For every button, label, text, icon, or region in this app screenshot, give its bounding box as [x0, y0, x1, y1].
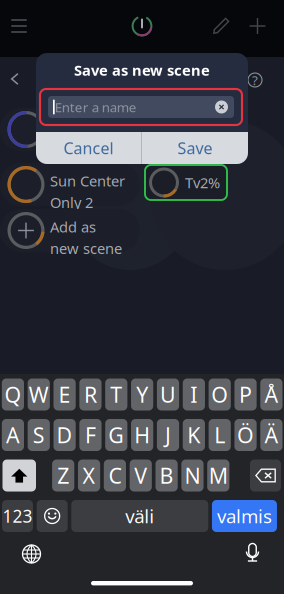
button[interactable]: V — [130, 459, 152, 491]
button[interactable]: M — [207, 459, 229, 491]
button[interactable]: Emoji — [37, 500, 68, 532]
button[interactable]: Q — [2, 378, 24, 410]
staticText: A — [6, 421, 20, 449]
staticText: väli — [125, 504, 154, 528]
button[interactable]: Back — [2, 66, 28, 92]
staticText: Save — [177, 137, 212, 159]
staticText: Å — [264, 380, 278, 409]
button[interactable]: D — [53, 419, 76, 451]
staticText: V — [134, 461, 147, 490]
button[interactable]: K — [183, 419, 205, 451]
button[interactable]: Add as — [0, 209, 140, 252]
staticText: ? — [252, 71, 258, 89]
staticText: P — [239, 380, 252, 409]
staticText: C — [108, 461, 121, 490]
staticText: 123 — [2, 504, 32, 527]
staticText: X — [82, 461, 95, 490]
button[interactable]: W — [28, 378, 50, 410]
button[interactable]: Tv2% — [145, 165, 227, 200]
button[interactable]: valmis — [212, 500, 277, 532]
button[interactable]: Ä — [260, 419, 282, 451]
button[interactable]: F — [79, 419, 101, 451]
button[interactable]: Add — [240, 9, 274, 43]
button[interactable]: Delete — [250, 459, 281, 491]
button[interactable]: S — [28, 419, 50, 451]
button[interactable]: Sun Center — [0, 163, 140, 206]
button[interactable]: O — [209, 378, 231, 410]
button[interactable]: Å — [260, 378, 282, 410]
staticText: Ö — [237, 421, 254, 449]
button[interactable]: C — [104, 459, 126, 491]
staticText: N — [184, 461, 200, 490]
button[interactable]: 123 — [2, 500, 33, 532]
staticText: new scene — [50, 238, 122, 258]
button[interactable]: Z — [52, 459, 74, 491]
staticText: valmis — [217, 504, 272, 528]
staticText: Only 2 — [50, 192, 93, 212]
staticText: G — [108, 421, 124, 449]
button[interactable]: Ö — [234, 419, 257, 451]
staticText: Ä — [264, 421, 278, 449]
staticText: Tv2% — [185, 173, 220, 192]
staticText: D — [57, 421, 73, 449]
button[interactable]: Next keyboard — [18, 541, 44, 567]
button[interactable]: E — [53, 378, 76, 410]
staticText: T — [110, 380, 122, 409]
button[interactable]: G — [105, 419, 127, 451]
button[interactable]: Help — [243, 68, 267, 92]
button[interactable]: H — [131, 419, 153, 451]
staticText: B — [160, 461, 174, 490]
staticText: M — [209, 461, 228, 490]
button[interactable]: R — [79, 378, 101, 410]
staticText: O — [211, 380, 228, 409]
staticText: Cancel — [63, 137, 113, 159]
staticText: Living room — [50, 116, 133, 135]
button[interactable]: väli — [71, 500, 208, 532]
staticText: Y — [136, 380, 148, 409]
staticText: F — [85, 421, 96, 449]
button[interactable]: X — [78, 459, 100, 491]
staticText: Sun Center — [50, 171, 125, 190]
button[interactable]: Save — [142, 132, 248, 164]
staticText: L — [214, 421, 225, 449]
staticText: Enter a name — [55, 98, 137, 116]
staticText: Q — [4, 380, 21, 409]
staticText: R — [84, 380, 97, 409]
staticText: W — [29, 380, 49, 409]
staticText: E — [59, 380, 71, 409]
button[interactable]: I — [183, 378, 205, 410]
button[interactable]: Menu — [2, 9, 36, 43]
staticText: I — [190, 380, 197, 409]
button[interactable]: Dictate — [239, 541, 265, 567]
staticText: K — [187, 421, 200, 449]
staticText: Evening — [50, 137, 104, 157]
button[interactable]: L — [209, 419, 231, 451]
staticText: Save as new scene — [74, 60, 210, 80]
button[interactable]: J — [157, 419, 179, 451]
button[interactable]: P — [234, 378, 257, 410]
button[interactable]: A — [2, 419, 24, 451]
staticText: H — [134, 421, 150, 449]
button[interactable]: B — [155, 459, 178, 491]
staticText: U — [160, 380, 176, 409]
staticText: Add as — [50, 217, 96, 236]
button[interactable]: Y — [131, 378, 153, 410]
button[interactable]: Living room — [0, 108, 140, 151]
button[interactable]: Edit — [204, 9, 238, 43]
button[interactable]: U — [157, 378, 179, 410]
button[interactable]: Shift — [2, 459, 36, 491]
staticText: Z — [57, 461, 69, 490]
button[interactable]: Cancel — [36, 132, 141, 164]
staticText: J — [165, 421, 171, 449]
button[interactable]: T — [105, 378, 127, 410]
staticText: S — [33, 421, 45, 449]
button[interactable]: N — [181, 459, 203, 491]
